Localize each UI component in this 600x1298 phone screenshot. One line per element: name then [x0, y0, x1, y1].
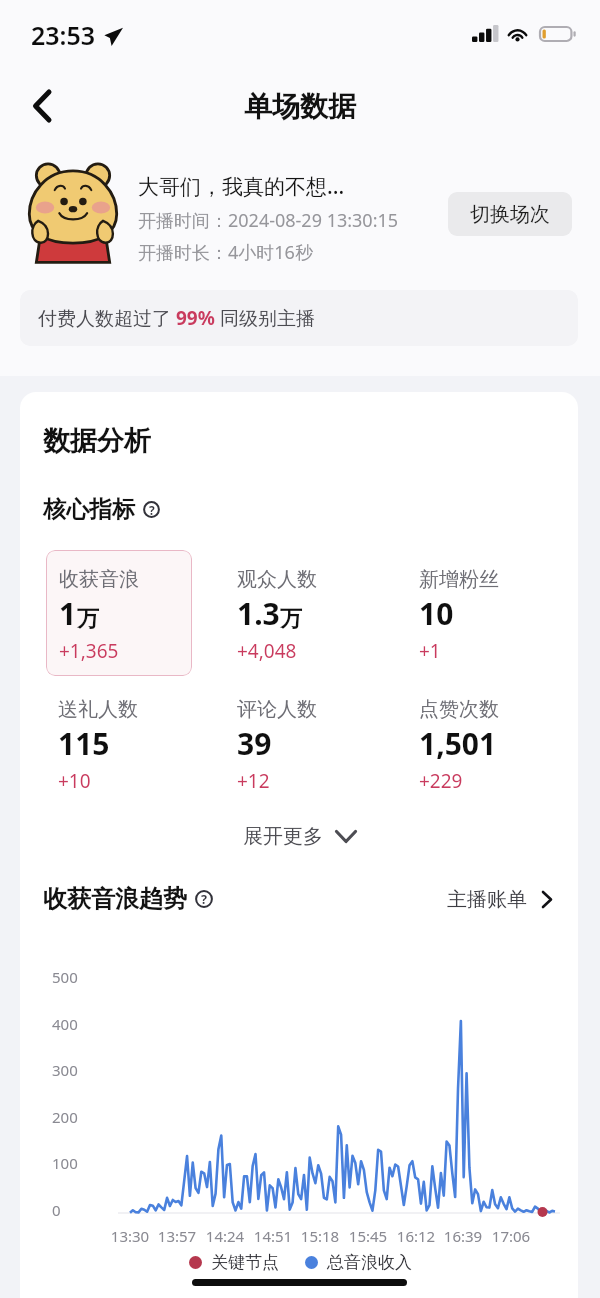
staticText: 1.3 — [237, 593, 280, 634]
staticText: 39 — [237, 723, 272, 764]
staticText: 23:53 — [31, 18, 96, 52]
staticText: 切换场次 — [470, 202, 550, 227]
staticText: 16:39 — [433, 1226, 493, 1246]
staticText: 13:30 — [100, 1226, 160, 1246]
staticText: 主播账单 — [447, 887, 527, 912]
staticText: 送礼人数 — [58, 697, 138, 722]
button[interactable]: Back — [16, 80, 68, 132]
staticText: 16:12 — [386, 1226, 446, 1246]
staticText: 14:51 — [243, 1226, 303, 1246]
staticText: 200 — [52, 1107, 78, 1127]
staticText: +229 — [419, 768, 463, 794]
staticText: +1,365 — [59, 638, 119, 664]
staticText: 收获音浪 — [59, 567, 139, 592]
staticText: 总音浪收入 — [327, 1252, 412, 1273]
staticText: 1 — [59, 593, 77, 634]
staticText: 核心指标 — [43, 495, 135, 524]
staticText: 万 — [280, 605, 302, 633]
staticText: 10 — [419, 593, 454, 634]
staticText: 115 — [58, 723, 110, 764]
staticText: 99% — [176, 305, 215, 331]
staticText: 17:06 — [481, 1226, 541, 1246]
staticText: 数据分析 — [43, 424, 151, 458]
staticText: +4,048 — [237, 638, 297, 664]
staticText: 0 — [52, 1200, 61, 1220]
staticText: ? — [149, 502, 155, 518]
staticText: 万 — [77, 605, 99, 633]
staticText: 评论人数 — [237, 697, 317, 722]
staticText: 开播时间：2024-08-29 13:30:15 — [138, 208, 399, 233]
staticText: 展开更多 — [243, 824, 323, 849]
button[interactable]: 切换场次 — [448, 192, 572, 236]
staticText: 13:57 — [147, 1226, 207, 1246]
staticText: +12 — [237, 768, 270, 794]
staticText: 点赞次数 — [419, 697, 499, 722]
staticText: 新增粉丝 — [419, 567, 499, 592]
staticText: 同级别主播 — [215, 305, 315, 331]
staticText: 100 — [52, 1153, 78, 1173]
staticText: 500 — [52, 967, 78, 987]
staticText: 关键节点 — [211, 1252, 279, 1273]
staticText: 观众人数 — [237, 567, 317, 592]
staticText: 单场数据 — [244, 89, 356, 124]
staticText: 14:24 — [195, 1226, 255, 1246]
staticText: 大哥们，我真的不想... — [138, 172, 345, 201]
staticText: 1,501 — [419, 723, 497, 764]
button[interactable]: 展开更多 — [229, 818, 371, 855]
staticText: 15:45 — [338, 1226, 398, 1246]
button[interactable]: 主播账单 — [441, 881, 559, 918]
staticText: 300 — [52, 1060, 78, 1080]
staticText: 付费人数超过了 — [38, 305, 176, 331]
staticText: +10 — [58, 768, 91, 794]
staticText: 400 — [52, 1014, 78, 1034]
staticText: 收获音浪趋势 — [43, 884, 187, 914]
staticText: ? — [201, 891, 208, 908]
button[interactable]: 收获音浪 — [46, 550, 192, 676]
staticText: +1 — [419, 638, 441, 664]
staticText: 开播时长：4小时16秒 — [138, 240, 313, 265]
staticText: 15:18 — [290, 1226, 350, 1246]
